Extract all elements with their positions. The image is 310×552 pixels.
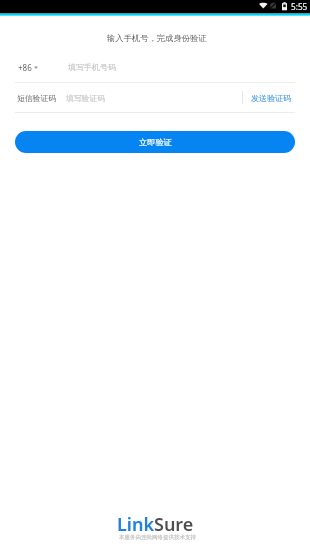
button[interactable]: +86 (0, 56, 46, 79)
button[interactable]: 填写手机号码 (46, 52, 310, 82)
staticText: 输入手机号，完成身份验证 (107, 33, 207, 43)
staticText: 短信验证码 (17, 93, 56, 103)
other: Choose country code (34, 64, 38, 72)
staticText: 本服务由连尚网络提供技术支持 (119, 534, 196, 541)
staticText: 填写验证码 (66, 93, 105, 103)
staticText: 5:55 (291, 1, 308, 12)
button[interactable]: 填写验证码 (56, 83, 242, 112)
staticText: 立即验证 (139, 137, 172, 147)
staticText: +86 (18, 62, 32, 73)
button[interactable]: 立即验证 (15, 131, 295, 153)
staticText: 填写手机号码 (68, 62, 116, 72)
button[interactable]: 发送验证码 (243, 87, 294, 109)
staticText: 发送验证码 (251, 93, 291, 103)
staticText: LinkSure (117, 512, 194, 537)
